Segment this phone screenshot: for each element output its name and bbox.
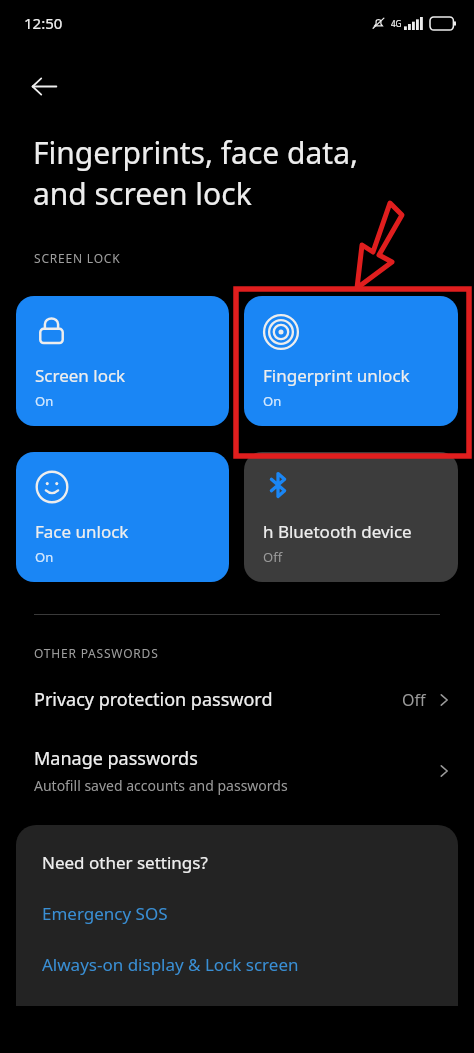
- button[interactable]: Privacy protection password: [0, 683, 474, 716]
- staticText: SCREEN LOCK: [34, 250, 121, 266]
- staticText: OTHER PASSWORDS: [34, 645, 159, 661]
- staticText: Privacy protection password: [34, 687, 273, 712]
- staticText: On: [35, 548, 54, 566]
- staticText: 12:50: [24, 13, 63, 33]
- staticText: Screen lock: [35, 364, 126, 387]
- staticText: On: [35, 392, 54, 410]
- staticText: On: [263, 392, 282, 410]
- staticText: Manage passwords: [34, 746, 198, 771]
- staticText: Fingerprints, face data, and screen lock: [33, 132, 359, 214]
- staticText: h Bluetooth device: [263, 520, 412, 543]
- staticText: Fingerprint unlock: [263, 364, 410, 387]
- staticText: Face unlock: [35, 520, 129, 543]
- button[interactable]: Always-on display & Lock screen: [42, 953, 299, 976]
- button[interactable]: Manage passwords: [0, 742, 474, 799]
- button[interactable]: Face unlock: [16, 452, 229, 582]
- staticText: Need other settings?: [42, 851, 208, 874]
- staticText: Off: [263, 548, 283, 566]
- button[interactable]: Back: [18, 60, 70, 112]
- button[interactable]: Screen lock: [16, 296, 229, 426]
- button[interactable]: Emergency SOS: [42, 902, 168, 925]
- button[interactable]: Fingerprint unlock: [244, 296, 458, 426]
- staticText: Autofill saved accounts and passwords: [34, 776, 288, 795]
- staticText: 4G: [391, 18, 402, 29]
- button[interactable]: h Bluetooth device: [244, 452, 458, 582]
- staticText: Off: [402, 689, 426, 711]
